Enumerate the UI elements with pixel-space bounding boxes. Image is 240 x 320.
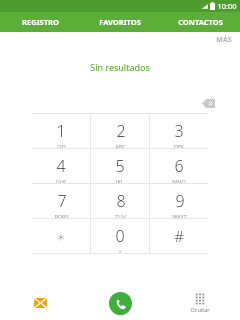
button[interactable]: 4 — [32, 149, 90, 183]
button[interactable]: # — [150, 219, 208, 253]
staticText: TUV — [115, 213, 126, 218]
button[interactable]: 6 — [150, 149, 208, 183]
staticText: Ocultar — [190, 306, 210, 313]
button[interactable]: 2 — [91, 114, 149, 148]
staticText: OD — [57, 143, 66, 148]
staticText: 10:00 — [217, 1, 237, 11]
staticText: WXYZ — [172, 213, 187, 218]
staticText: PQRS — [54, 213, 69, 218]
staticText: GHI — [56, 178, 66, 183]
button[interactable]: ∗ — [32, 219, 90, 253]
staticText: 7 — [57, 190, 67, 212]
button[interactable]: 9 — [150, 184, 208, 218]
button[interactable]: Borrar — [198, 96, 218, 110]
button[interactable]: Llamar — [80, 286, 160, 320]
staticText: 9 — [175, 190, 185, 212]
staticText: ABC — [115, 143, 126, 148]
staticText: 6 — [174, 155, 184, 177]
staticText: # — [174, 226, 184, 246]
button[interactable]: Mensaje — [0, 286, 80, 320]
button[interactable]: FAVORITOS — [80, 12, 160, 32]
staticText: 0 — [115, 225, 125, 247]
button[interactable]: 5 — [91, 149, 149, 183]
staticText: Sin resultados — [90, 61, 150, 73]
button[interactable]: Ocultar teclado — [160, 286, 240, 320]
staticText: REGISTRO — [22, 17, 59, 27]
button[interactable]: 8 — [91, 184, 149, 218]
staticText: 8 — [116, 190, 126, 212]
staticText: 4 — [56, 155, 66, 177]
button[interactable]: 3 — [150, 114, 208, 148]
staticText: 5 — [115, 155, 125, 177]
staticText: + — [118, 248, 122, 253]
staticText: 1 — [56, 120, 66, 142]
staticText: MNO — [172, 178, 186, 183]
button[interactable]: REGISTRO — [0, 12, 80, 32]
button[interactable]: MÁS — [216, 35, 232, 45]
staticText: MÁS — [216, 35, 232, 45]
button[interactable]: CONTACTOS — [160, 12, 240, 32]
button[interactable]: 0 — [91, 219, 149, 253]
staticText: FAVORITOS — [99, 17, 141, 27]
staticText: JKL — [116, 178, 124, 183]
staticText: CONTACTOS — [178, 17, 223, 27]
staticText: 3 — [174, 120, 184, 142]
staticText: DEF — [174, 143, 184, 148]
staticText: ∗ — [56, 228, 66, 245]
staticText: 2 — [116, 120, 126, 142]
button[interactable]: 7 — [32, 184, 90, 218]
button[interactable]: 1 — [32, 114, 90, 148]
